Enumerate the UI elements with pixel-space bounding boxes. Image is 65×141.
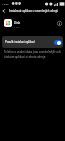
button[interactable]: Disk [0,18,65,28]
button[interactable]: Info [56,20,62,26]
staticText: Telefon a osobní data jsou zranitelnější… [4,50,62,59]
staticText: 1.0.4 [14,25,20,28]
staticText: Instalovat aplikace z neznámých zdrojů [9,9,59,13]
staticText: 14:32 [2,2,9,5]
button[interactable]: Povolit instalaci aplikací [2,36,63,48]
staticText: Disk [14,21,21,25]
button[interactable]: Toggle [54,40,62,45]
button[interactable]: Back [0,7,8,14]
staticText: Povolit instalaci aplikací [5,40,35,44]
